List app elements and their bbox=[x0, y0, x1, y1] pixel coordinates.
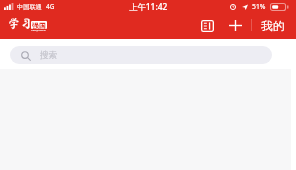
button[interactable]: 搜索 bbox=[10, 46, 272, 64]
button[interactable]: Scan bbox=[199, 17, 216, 34]
staticText: XUEXIQIANGGUO bbox=[31, 29, 46, 32]
staticText: 学习 bbox=[8, 17, 33, 29]
staticText: 51% bbox=[252, 2, 266, 11]
button[interactable]: Add bbox=[227, 17, 244, 34]
staticText: 我的 bbox=[261, 19, 285, 34]
staticText: 上午11:42 bbox=[129, 1, 168, 12]
staticText: 搜索 bbox=[40, 50, 58, 61]
staticText: 强国 bbox=[32, 21, 46, 29]
staticText: 4G bbox=[46, 2, 55, 11]
button[interactable]: 我的 bbox=[258, 17, 288, 36]
staticText: 中国联通 bbox=[17, 3, 42, 11]
